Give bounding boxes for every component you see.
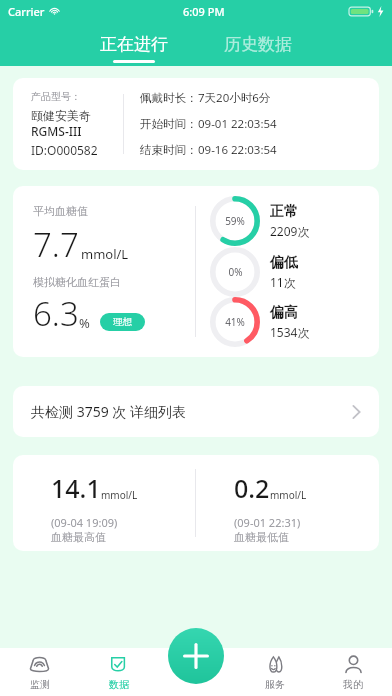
staticText: 正常: [270, 203, 298, 221]
staticText: 2209次: [270, 223, 310, 239]
staticText: 血糖最低值: [234, 530, 289, 544]
staticText: 开始时间：: [140, 117, 198, 131]
staticText: 理想: [113, 316, 132, 328]
button[interactable]: 41%: [210, 297, 310, 347]
staticText: 59%: [225, 214, 245, 228]
staticText: 监测: [30, 678, 50, 691]
staticText: 0%: [228, 265, 243, 279]
staticText: ID:O000582: [31, 142, 98, 158]
staticText: 佩戴时长：: [140, 91, 198, 105]
staticText: (09-01 22:31): [234, 515, 301, 530]
staticText: 0.2: [234, 471, 270, 505]
button[interactable]: 共检测 3759 次 详细列表: [13, 386, 379, 437]
staticText: 正在进行: [100, 34, 168, 55]
staticText: 14.1: [51, 471, 101, 505]
staticText: 09-16 22:03:54: [198, 142, 277, 158]
button[interactable]: 服务: [236, 648, 314, 696]
staticText: 41%: [225, 315, 245, 329]
staticText: 7.7: [33, 222, 79, 267]
staticText: 我的: [343, 678, 363, 691]
staticText: 11次: [270, 274, 296, 290]
staticText: 6.3: [33, 291, 79, 336]
staticText: mmol/L: [101, 488, 138, 502]
staticText: 颐健安美奇: [31, 108, 91, 123]
staticText: 7天20小时6分: [198, 90, 271, 106]
button[interactable]: 监测: [0, 648, 79, 696]
staticText: 历史数据: [224, 34, 292, 55]
button[interactable]: 0%: [210, 247, 298, 297]
staticText: 产品型号：: [31, 90, 81, 103]
staticText: 09-01 22:03:54: [198, 116, 277, 132]
staticText: 数据: [109, 678, 129, 691]
button[interactable]: Add record: [168, 628, 224, 684]
staticText: 平均血糖值: [33, 204, 88, 218]
staticText: Carrier: [8, 4, 45, 19]
staticText: mmol/L: [270, 488, 307, 502]
staticText: 1534次: [270, 324, 310, 340]
staticText: mmol/L: [81, 245, 129, 263]
button[interactable]: 理想: [100, 313, 145, 331]
staticText: RGMS-III: [31, 123, 82, 139]
staticText: 血糖最高值: [51, 530, 106, 544]
button[interactable]: 59%: [210, 196, 310, 246]
button[interactable]: 正在进行: [88, 34, 180, 66]
staticText: 结束时间：: [140, 143, 198, 157]
button[interactable]: 历史数据: [212, 34, 304, 66]
staticText: 服务: [265, 678, 285, 691]
staticText: 6:09 PM: [183, 4, 225, 19]
staticText: 模拟糖化血红蛋白: [33, 275, 121, 289]
button[interactable]: 我的: [314, 648, 392, 696]
staticText: 偏高: [270, 304, 298, 322]
staticText: (09-04 19:09): [51, 515, 118, 530]
staticText: 共检测 3759 次 详细列表: [31, 402, 186, 421]
button[interactable]: 数据: [79, 648, 158, 696]
staticText: %: [79, 314, 90, 332]
staticText: 偏低: [270, 254, 298, 272]
